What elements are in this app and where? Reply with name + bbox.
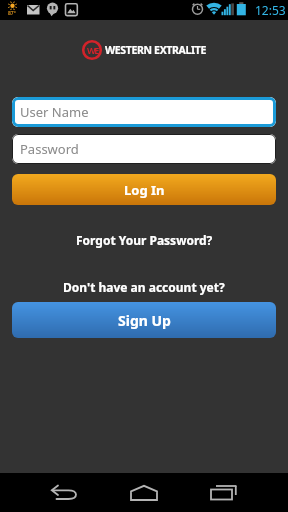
- staticText: 87°: [8, 10, 16, 17]
- button[interactable]: [24, 473, 104, 512]
- staticText: User Name: [20, 103, 89, 121]
- button[interactable]: Forgot Your Password?: [76, 232, 213, 248]
- button[interactable]: [184, 473, 264, 512]
- button[interactable]: Password: [12, 134, 276, 164]
- staticText: 12:53: [255, 2, 286, 18]
- staticText: Log In: [124, 181, 165, 199]
- staticText: Password: [20, 140, 79, 158]
- staticText: Don't have an account yet?: [63, 279, 225, 295]
- button[interactable]: Log In: [12, 174, 276, 205]
- button[interactable]: [104, 473, 184, 512]
- button[interactable]: Sign Up: [12, 302, 276, 338]
- staticText: Sign Up: [118, 311, 171, 330]
- staticText: WE: [87, 44, 98, 56]
- staticText: WESTERN EXTRALITE: [105, 43, 206, 57]
- button[interactable]: User Name: [12, 97, 276, 127]
